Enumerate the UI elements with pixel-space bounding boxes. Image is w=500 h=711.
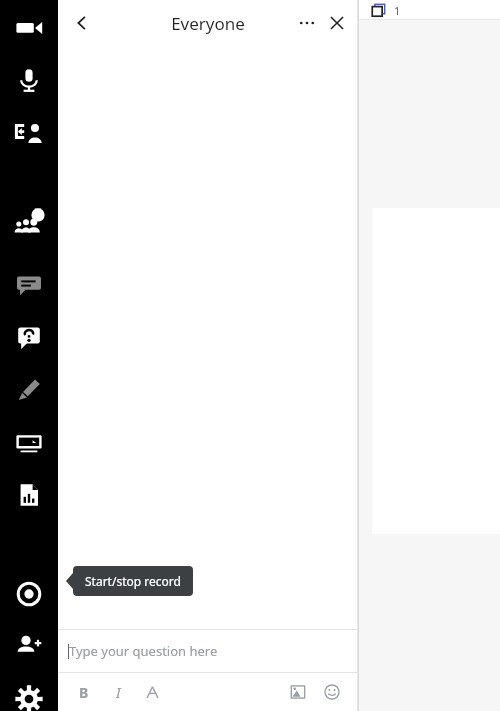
staticText: 1 (394, 3, 401, 18)
button[interactable]: Chat (5, 261, 53, 309)
button[interactable]: Close (322, 8, 352, 38)
button[interactable]: Back (66, 7, 98, 39)
button[interactable]: Settings (5, 675, 53, 711)
button[interactable]: Type your question here (58, 630, 358, 672)
button[interactable]: Participants, 2 (5, 200, 53, 248)
button[interactable]: Bold (72, 680, 96, 704)
button[interactable]: Start/stop record (5, 570, 53, 618)
button[interactable]: Insert image (286, 680, 310, 704)
other: Windows (370, 2, 386, 18)
staticText: I (116, 683, 121, 702)
button[interactable]: Windows (370, 2, 401, 18)
button[interactable]: Share screen with person (5, 110, 53, 158)
button[interactable]: Invite people (5, 620, 53, 668)
button[interactable]: Camera (5, 4, 53, 52)
button[interactable]: Questions (5, 313, 53, 361)
staticText: Everyone (171, 12, 245, 35)
staticText: Start/stop record (85, 573, 181, 589)
button[interactable]: Insert emoji (320, 680, 344, 704)
button[interactable]: Microphone (5, 56, 53, 104)
button[interactable]: Polls (5, 471, 53, 519)
staticText: Type your question here (69, 642, 218, 660)
button[interactable]: Text format (140, 680, 164, 704)
button[interactable]: Annotate (5, 365, 53, 413)
button[interactable]: More options (292, 8, 322, 38)
button[interactable]: Italic (106, 680, 130, 704)
button[interactable]: Present screen (5, 419, 53, 467)
staticText: B (79, 683, 89, 702)
